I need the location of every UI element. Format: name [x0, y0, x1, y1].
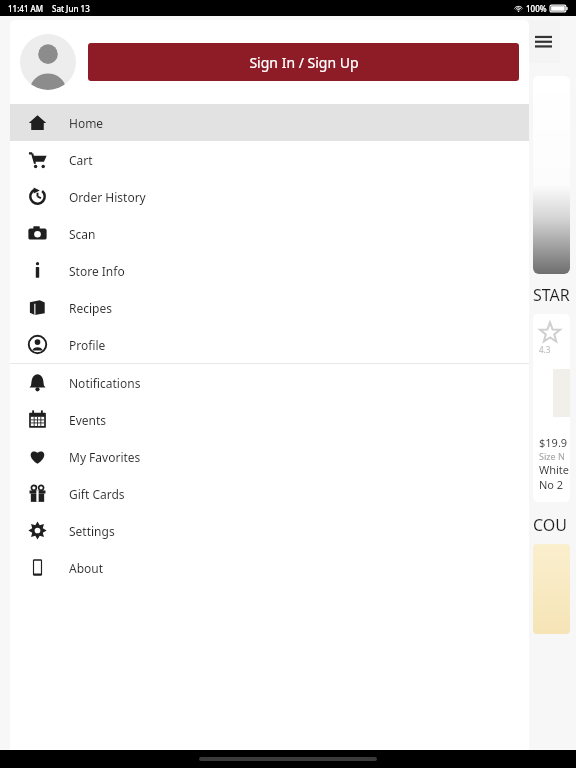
button[interactable]: Profile — [10, 326, 529, 363]
staticText: Home — [69, 115, 104, 131]
staticText: Sat Jun 13 — [52, 3, 90, 14]
staticText: Settings — [69, 523, 115, 539]
staticText: Cart — [69, 152, 93, 168]
button[interactable]: Order History — [10, 178, 529, 215]
button[interactable]: Sign In / Sign Up — [88, 43, 519, 81]
staticText: 4.3 — [539, 344, 551, 355]
staticText: Scan — [69, 226, 96, 242]
button[interactable]: Recipes — [10, 289, 529, 326]
staticText: Size N — [539, 450, 565, 462]
staticText: Profile — [69, 337, 106, 353]
staticText: Sign In / Sign Up — [249, 53, 359, 72]
staticText: COU — [533, 514, 567, 536]
button[interactable]: Cart — [10, 141, 529, 178]
button[interactable]: Settings — [10, 512, 529, 549]
staticText: 11:41 AM — [8, 3, 44, 14]
staticText: Order History — [69, 189, 146, 205]
button[interactable]: Notifications — [10, 364, 529, 401]
button[interactable]: My Favorites — [10, 438, 529, 475]
staticText: 100% — [526, 3, 547, 14]
staticText: Notifications — [69, 375, 141, 391]
staticText: About — [69, 560, 104, 576]
button[interactable]: Store Info — [10, 252, 529, 289]
staticText: My Favorites — [69, 449, 141, 465]
staticText: White — [539, 462, 570, 477]
button[interactable]: Scan — [10, 215, 529, 252]
button[interactable]: About — [10, 549, 529, 586]
staticText: Gift Cards — [69, 486, 125, 502]
staticText: STAR — [533, 284, 570, 306]
button[interactable]: Home — [10, 104, 529, 141]
staticText: Events — [69, 412, 107, 428]
staticText: Recipes — [69, 300, 112, 316]
staticText: No 2 — [539, 477, 564, 492]
staticText: Store Info — [69, 263, 125, 279]
button[interactable]: Open navigation menu — [527, 20, 560, 63]
staticText: $19.9 — [539, 435, 568, 450]
button[interactable]: Account avatar — [20, 34, 76, 90]
button[interactable]: Events — [10, 401, 529, 438]
button[interactable]: Gift Cards — [10, 475, 529, 512]
